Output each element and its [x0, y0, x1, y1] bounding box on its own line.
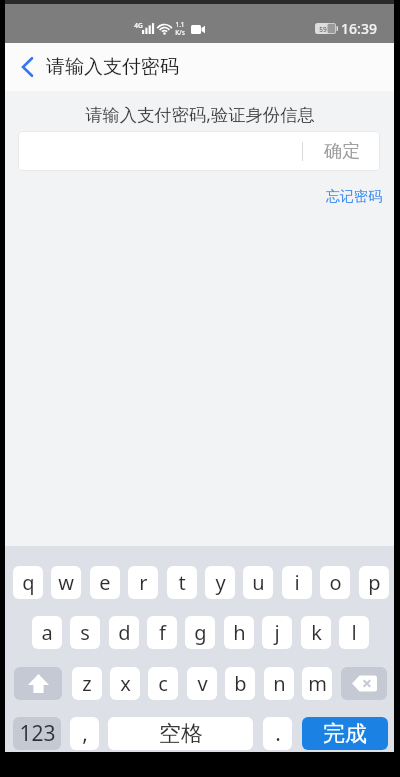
- staticText: e: [99, 569, 111, 596]
- staticText: 4G: [134, 21, 143, 30]
- staticText: r: [139, 569, 148, 596]
- staticText: t: [178, 569, 186, 596]
- button[interactable]: g: [185, 616, 215, 649]
- staticText: u: [252, 569, 265, 596]
- button[interactable]: o: [320, 566, 350, 599]
- staticText: 请输入支付密码: [46, 55, 179, 79]
- staticText: 59: [319, 25, 327, 34]
- staticText: K/s: [175, 28, 185, 37]
- button[interactable]: q: [13, 566, 43, 599]
- staticText: n: [273, 670, 286, 697]
- button[interactable]: i: [282, 566, 312, 599]
- staticText: q: [22, 569, 35, 596]
- staticText: y: [215, 569, 226, 596]
- staticText: k: [311, 619, 322, 646]
- staticText: 请输入支付密码,验证身份信息: [85, 103, 315, 127]
- staticText: 16:39: [341, 19, 377, 38]
- button[interactable]: u: [243, 566, 273, 599]
- staticText: v: [197, 670, 208, 697]
- button[interactable]: c: [148, 667, 178, 700]
- staticText: d: [118, 619, 131, 646]
- button[interactable]: p: [359, 566, 389, 599]
- staticText: .: [275, 719, 281, 748]
- button[interactable]: d: [109, 616, 139, 649]
- button[interactable]: e: [90, 566, 120, 599]
- staticText: l: [351, 619, 357, 646]
- staticText: w: [58, 569, 74, 596]
- button[interactable]: l: [339, 616, 369, 649]
- button[interactable]: n: [264, 667, 294, 700]
- staticText: p: [368, 569, 381, 596]
- staticText: 确定: [324, 140, 360, 163]
- button[interactable]: [11, 51, 43, 83]
- button[interactable]: w: [51, 566, 81, 599]
- button[interactable]: [14, 667, 62, 700]
- button[interactable]: b: [225, 667, 255, 700]
- button[interactable]: m: [302, 667, 332, 700]
- staticText: f: [159, 619, 166, 646]
- staticText: a: [41, 619, 53, 646]
- button[interactable]: k: [301, 616, 331, 649]
- button[interactable]: r: [128, 566, 158, 599]
- button[interactable]: z: [72, 667, 102, 700]
- staticText: 完成: [323, 720, 367, 748]
- button[interactable]: s: [70, 616, 100, 649]
- button[interactable]: [341, 667, 387, 700]
- button[interactable]: f: [147, 616, 177, 649]
- staticText: s: [80, 619, 90, 646]
- staticText: 空格: [159, 720, 203, 748]
- staticText: ,: [82, 719, 88, 748]
- button[interactable]: 空格: [108, 717, 253, 750]
- staticText: o: [329, 569, 342, 596]
- staticText: c: [158, 670, 168, 697]
- button[interactable]: h: [224, 616, 254, 649]
- staticText: x: [120, 670, 131, 697]
- staticText: m: [308, 670, 327, 697]
- button[interactable]: t: [167, 566, 197, 599]
- staticText: z: [82, 670, 92, 697]
- staticText: g: [194, 619, 207, 646]
- button[interactable]: 123: [13, 717, 61, 750]
- button[interactable]: y: [205, 566, 235, 599]
- button[interactable]: 忘记密码: [326, 188, 382, 206]
- button[interactable]: j: [262, 616, 292, 649]
- button[interactable]: .: [263, 717, 292, 750]
- button[interactable]: 确定: [303, 131, 380, 171]
- button[interactable]: x: [110, 667, 140, 700]
- staticText: j: [274, 619, 280, 646]
- staticText: i: [294, 569, 300, 596]
- staticText: 忘记密码: [326, 188, 382, 206]
- staticText: 1.1: [175, 20, 185, 29]
- staticText: h: [233, 619, 246, 646]
- staticText: b: [234, 670, 247, 697]
- staticText: 123: [19, 719, 56, 748]
- button[interactable]: v: [187, 667, 217, 700]
- button[interactable]: 完成: [302, 717, 388, 750]
- button[interactable]: a: [32, 616, 62, 649]
- button[interactable]: ,: [70, 717, 99, 750]
